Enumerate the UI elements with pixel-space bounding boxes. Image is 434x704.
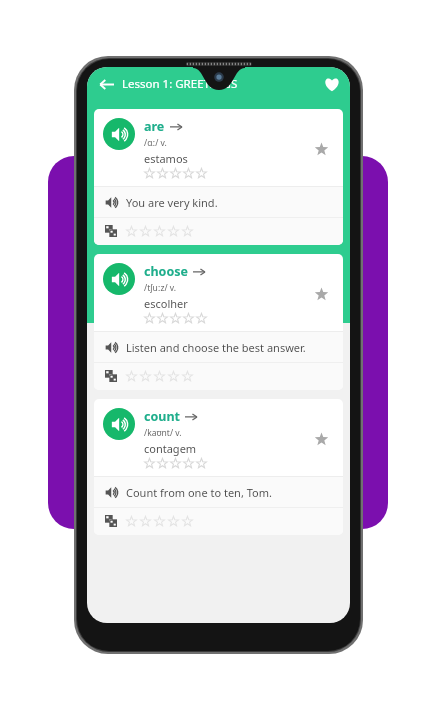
staticText: /kaʊnt/ v. [144,427,182,439]
button[interactable]: Translate [103,368,119,384]
staticText: estamos [144,151,188,166]
button[interactable]: Translate [103,223,119,239]
staticText: escolher [144,296,188,311]
staticText: /ɑː/ v. [144,137,167,149]
button[interactable]: Bookmark [308,426,334,452]
button[interactable]: Favorite [318,70,346,98]
staticText: count [144,408,180,425]
staticText: Lesson 1: GREETINGS [122,76,238,92]
staticText: /tʃuːz/ v. [144,282,177,294]
button[interactable]: Play word audio [103,408,135,440]
button[interactable]: Play word audio [94,254,343,390]
staticText: You are very kind. [126,195,218,210]
staticText: Count from one to ten, Tom. [126,485,272,500]
staticText: Listen and choose the best answer. [126,340,306,355]
button[interactable]: Bookmark [308,136,334,162]
button[interactable]: Play sentence audio [103,339,119,355]
staticText: contagem [144,441,197,456]
button[interactable]: Play word audio [103,118,135,150]
button[interactable]: Play sentence audio [103,194,119,210]
staticText: choose [144,263,188,280]
button[interactable]: Back [91,69,121,99]
button[interactable]: Play word audio [94,399,343,535]
button[interactable]: Play word audio [103,263,135,295]
button[interactable]: Translate [103,513,119,529]
button[interactable]: Bookmark [308,281,334,307]
button[interactable]: Play word audio [94,109,343,245]
button[interactable]: Play sentence audio [103,484,119,500]
staticText: are [144,118,165,135]
